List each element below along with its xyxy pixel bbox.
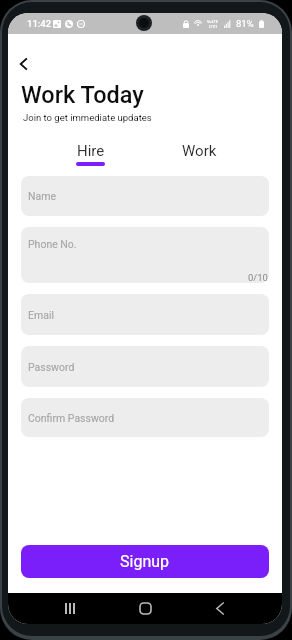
staticText: 81%	[236, 18, 254, 29]
staticText: Password	[28, 361, 75, 373]
button[interactable]: Password	[21, 346, 269, 387]
button[interactable]: Email	[21, 294, 269, 335]
button[interactable]: Recents	[57, 595, 83, 621]
staticText: VoLTE	[207, 19, 219, 24]
staticText: Phone No.	[28, 238, 77, 250]
staticText: Join to get immediate updates	[23, 112, 152, 123]
staticText: 0/10	[248, 272, 268, 283]
staticText: Name	[28, 190, 56, 202]
button[interactable]: Hire	[36, 142, 145, 164]
button[interactable]: Work	[145, 142, 254, 164]
staticText: Work	[182, 142, 217, 160]
button[interactable]: Confirm Password	[21, 398, 269, 437]
button[interactable]: Back	[207, 595, 233, 621]
staticText: Work Today	[21, 81, 144, 109]
staticText: 11:42	[27, 18, 52, 29]
staticText: Signup	[120, 552, 170, 571]
button[interactable]: Name	[21, 176, 269, 216]
button[interactable]: Back	[11, 52, 35, 76]
staticText: Confirm Password	[28, 412, 115, 424]
staticText: Email	[28, 309, 54, 321]
staticText: Hire	[77, 142, 105, 160]
button[interactable]: Signup	[21, 545, 269, 578]
button[interactable]: Home	[132, 595, 158, 621]
button[interactable]: Phone No.	[21, 227, 269, 283]
staticText: LTE1	[209, 24, 218, 29]
